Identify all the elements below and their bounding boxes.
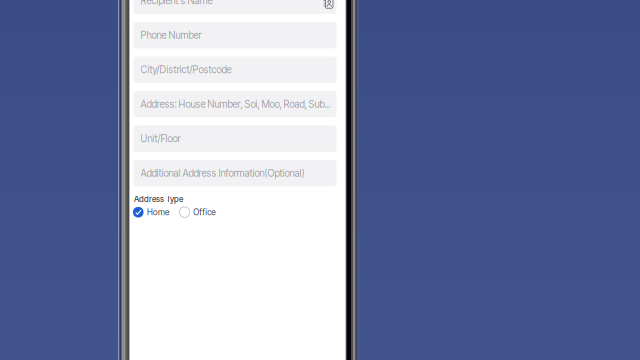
staticText: Home	[147, 207, 169, 217]
button[interactable]: City/District/Postcode	[133, 56, 336, 83]
staticText: Address: House Number, Soi, Moo, Road, S…	[141, 98, 331, 110]
button[interactable]: Unit/Floor	[133, 125, 336, 152]
staticText: Recipient's Name	[141, 0, 213, 7]
button[interactable]: Office	[179, 206, 215, 218]
staticText: Additional Address Information(Optional)	[141, 167, 305, 179]
staticText: Office	[193, 207, 215, 217]
staticText: City/District/Postcode	[141, 64, 232, 76]
staticText: Phone Number	[141, 29, 202, 41]
button[interactable]: Phone Number	[133, 22, 336, 48]
button[interactable]: Address: House Number, Soi, Moo, Road, S…	[133, 91, 336, 117]
staticText: Unit/Floor	[141, 133, 181, 145]
staticText: Address Type	[134, 194, 183, 204]
button[interactable]: Recipient's Name	[133, 0, 336, 14]
button[interactable]: Additional Address Information(Optional)	[133, 160, 336, 186]
button[interactable]: Home	[133, 206, 169, 218]
